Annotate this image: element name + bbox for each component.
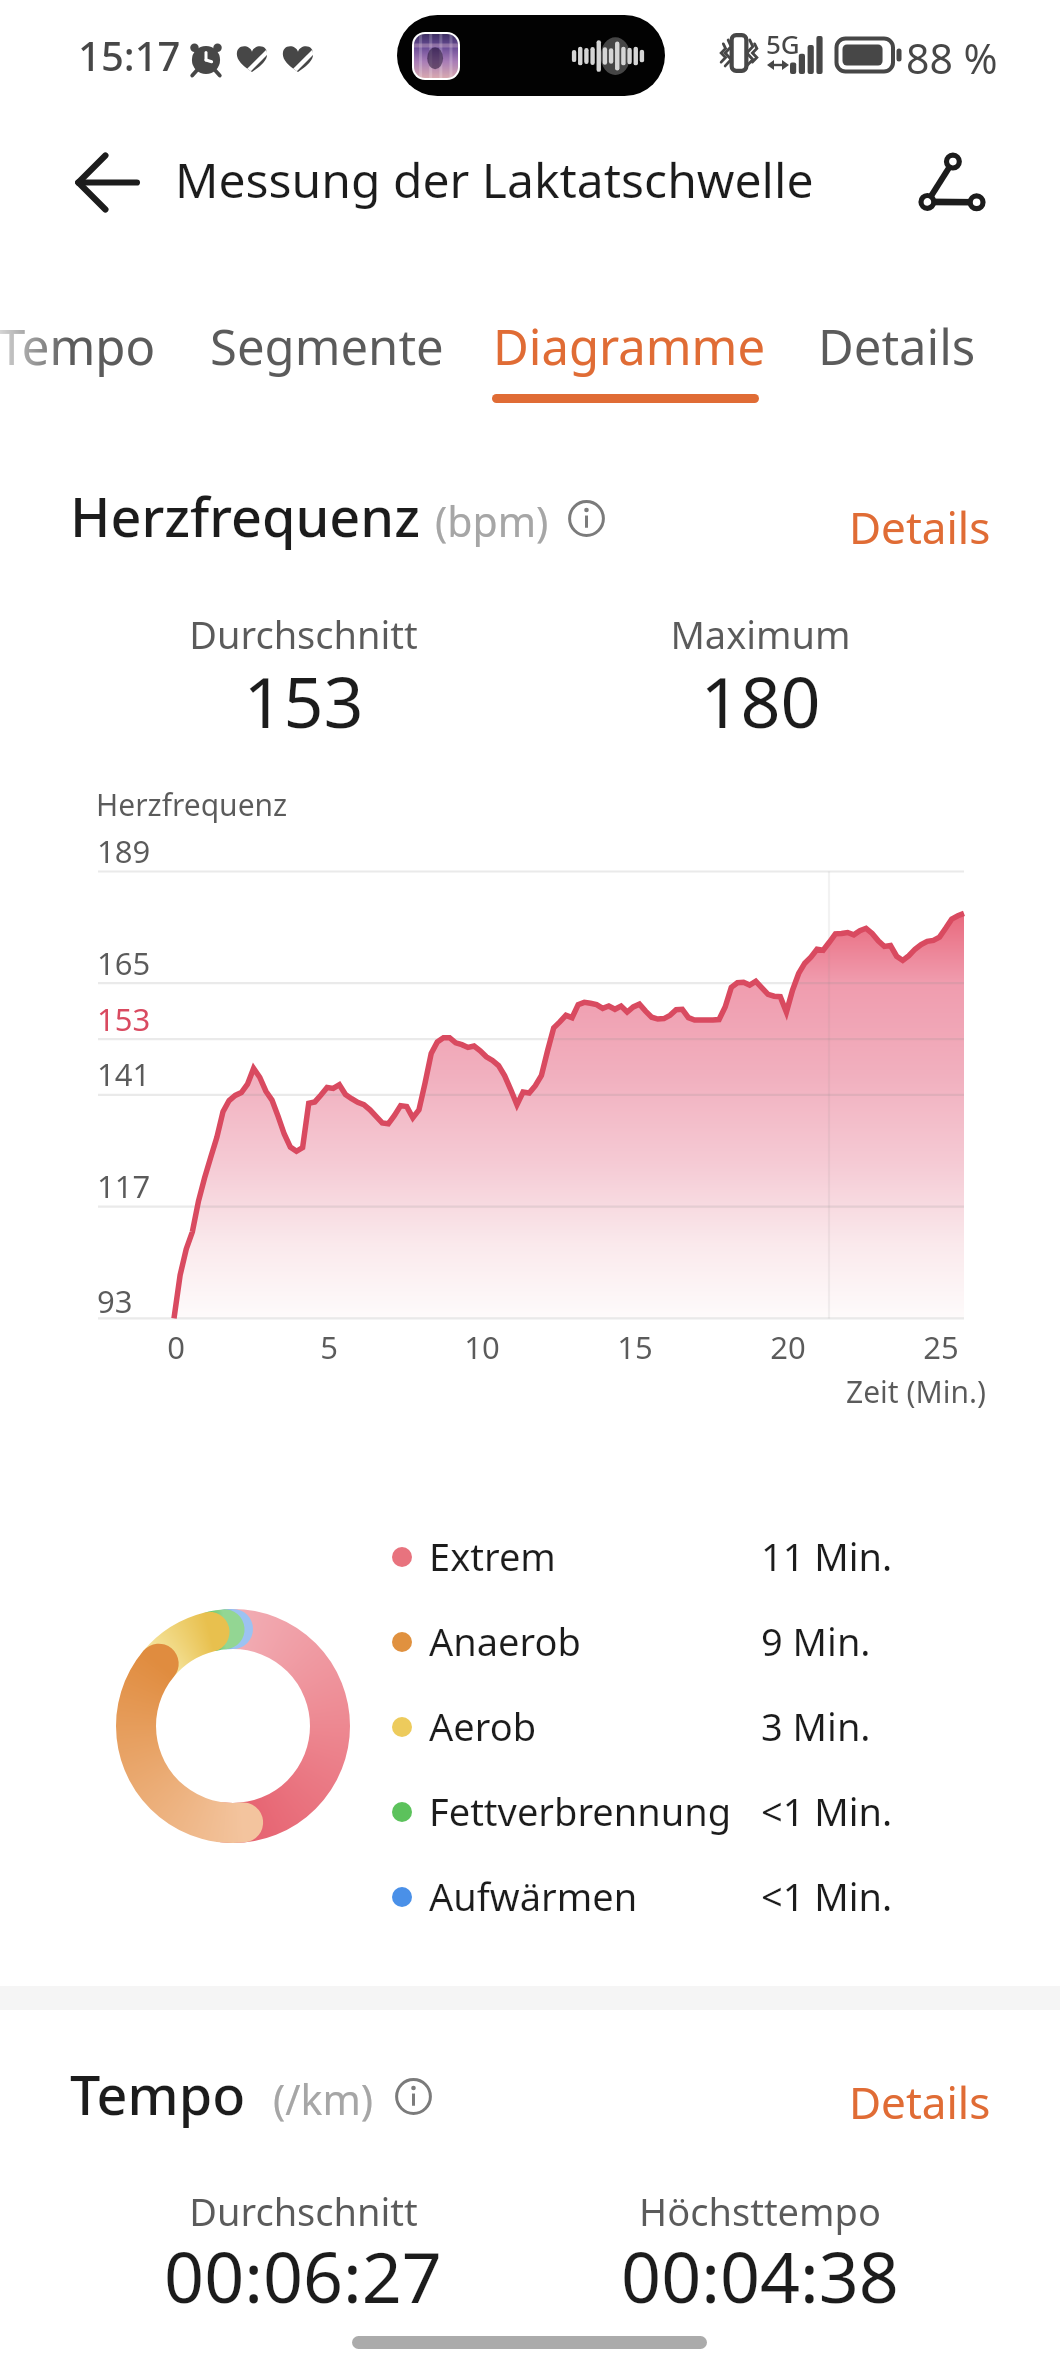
button[interactable]: Aerob [388,1685,948,1769]
staticText: 189 [97,830,151,872]
staticText: Höchsttempo [639,2185,881,2237]
staticText: Herzfrequenz [96,784,288,825]
staticText: Segmente [210,313,444,380]
staticText: Maximum [670,608,851,660]
staticText: (/km) [273,2071,374,2127]
staticText: 165 [97,942,151,984]
staticText: 141 [97,1053,151,1095]
button[interactable]: Info about Herzfrequenz [568,500,605,537]
staticText: 25 [923,1326,959,1368]
staticText: 9 Min. [761,1615,871,1667]
staticText: 3 Min. [761,1700,871,1752]
staticText: 180 [700,653,821,748]
staticText: Diagramme [493,313,766,380]
button[interactable]: Tempo [0,306,170,386]
staticText: 00:06:27 [164,2228,442,2323]
staticText: Aufwärmen [429,1870,638,1922]
button[interactable]: Diagramme [481,306,777,386]
button[interactable]: Details [832,2068,1008,2136]
staticText: 20 [770,1326,806,1368]
staticText: 0 [167,1326,185,1368]
staticText: 117 [97,1165,151,1207]
staticText: 10 [464,1326,500,1368]
staticText: 153 [97,998,151,1040]
staticText: 00:04:38 [621,2228,899,2323]
staticText: Zeit (Min.) [846,1371,986,1412]
staticText: 153 [243,653,364,748]
staticText: 15:17 [78,28,181,82]
staticText: 15 [617,1326,653,1368]
staticText: Durchschnitt [189,2185,418,2237]
staticText: 11 Min. [761,1530,893,1582]
staticText: Fettverbrennung [429,1785,732,1837]
staticText: Details [849,2072,991,2132]
staticText: Details [849,497,991,557]
button[interactable]: Back [58,140,154,226]
button[interactable]: Anaerob [388,1600,948,1684]
button[interactable]: Info about Tempo [395,2078,432,2115]
staticText: Tempo [70,2057,246,2131]
staticText: (bpm) [435,493,549,549]
staticText: Messung der Laktatschwelle [175,147,814,212]
button[interactable]: Details [787,306,1007,386]
staticText: <1 Min. [761,1870,893,1922]
staticText: Durchschnitt [189,608,418,660]
staticText: 5 [320,1326,338,1368]
button[interactable]: Segmente [187,306,467,386]
staticText: 5G [766,26,800,61]
staticText: Aerob [429,1700,537,1752]
staticText: 88 % [906,30,998,86]
staticText: Details [818,313,976,380]
button[interactable]: Aufwärmen [388,1855,948,1939]
staticText: Anaerob [429,1615,581,1667]
button[interactable]: Extrem [388,1515,948,1599]
button[interactable]: Share [908,140,1004,226]
button[interactable]: Fettverbrennung [388,1770,948,1854]
staticText: <1 Min. [761,1785,893,1837]
staticText: 93 [97,1280,133,1322]
staticText: Herzfrequenz [70,479,420,553]
staticText: Extrem [429,1530,556,1582]
staticText: Tempo [0,313,156,380]
button[interactable]: Details [832,493,1008,561]
